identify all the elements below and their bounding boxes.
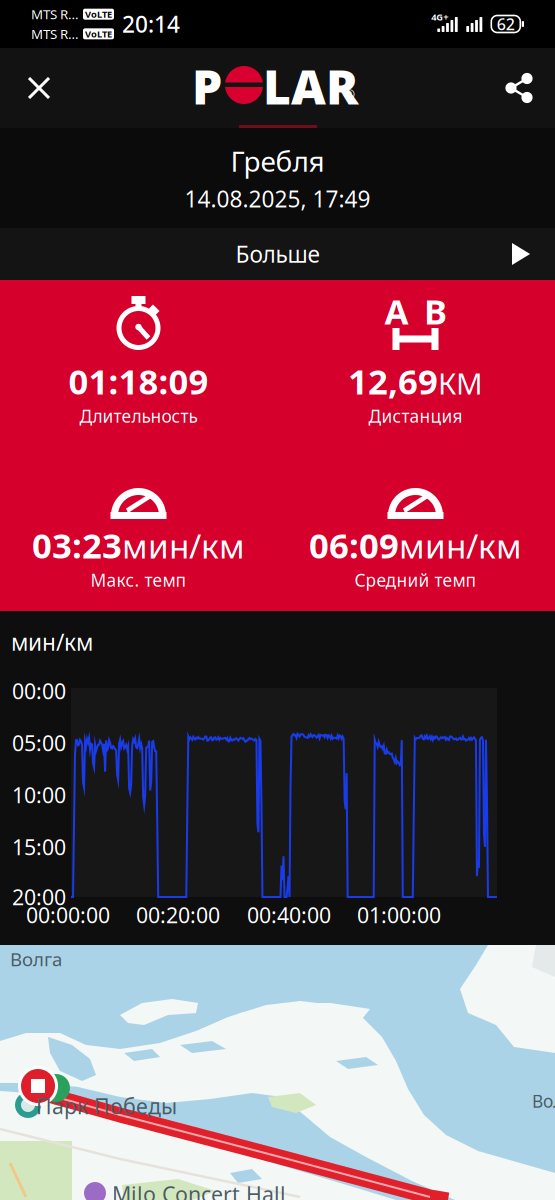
staticText: VoLTE (85, 8, 112, 20)
staticText: мин/км (122, 523, 245, 568)
staticText: 00:00 (12, 677, 66, 705)
staticText: мин/км (399, 523, 522, 568)
staticText: 03:23 (32, 522, 122, 568)
staticText: Больше (235, 239, 319, 269)
staticText: 00:00:00 (26, 901, 110, 929)
button[interactable]: Больше (0, 228, 555, 280)
staticText: Длительность (79, 404, 197, 427)
staticText: 05:00 (12, 729, 66, 757)
staticText: КМ (438, 364, 483, 403)
staticText: MTS R… (31, 25, 79, 43)
staticText: ® (344, 85, 355, 103)
staticText: Волга (532, 1089, 555, 1112)
staticText: LAR (263, 54, 358, 118)
staticText: Волга (10, 947, 62, 971)
staticText: Гребля (230, 142, 324, 180)
staticText: Парк Победы (36, 1092, 177, 1120)
staticText: 4G+ (431, 11, 448, 23)
staticText: 00:40:00 (247, 901, 331, 929)
staticText: Макс. темп (90, 568, 186, 591)
staticText: B (424, 288, 447, 334)
staticText: 00:20:00 (136, 901, 220, 929)
staticText: мин/км (11, 627, 93, 657)
staticText: 06:09 (309, 522, 399, 568)
staticText: VoLTE (85, 28, 112, 40)
staticText: 12,69 (348, 358, 438, 404)
button[interactable]: Share (0, 48, 78, 128)
staticText: Средний темп (354, 568, 476, 591)
staticText: MTS R… (31, 5, 79, 23)
staticText: 62 (497, 13, 515, 35)
staticText: 20:14 (122, 9, 180, 39)
staticText: 14.08.2025, 17:49 (184, 183, 370, 214)
staticText: 01:18:09 (68, 358, 208, 404)
staticText: Дистанция (368, 404, 462, 427)
staticText: 20:00 (12, 883, 66, 911)
staticText: 10:00 (12, 781, 66, 809)
staticText: 01:00:00 (357, 901, 441, 929)
staticText: 15:00 (12, 833, 66, 861)
button[interactable]: Close (0, 48, 78, 128)
staticText: P (192, 54, 222, 118)
staticText: A (384, 288, 408, 334)
staticText: Milo Concert Hall (112, 1180, 286, 1200)
